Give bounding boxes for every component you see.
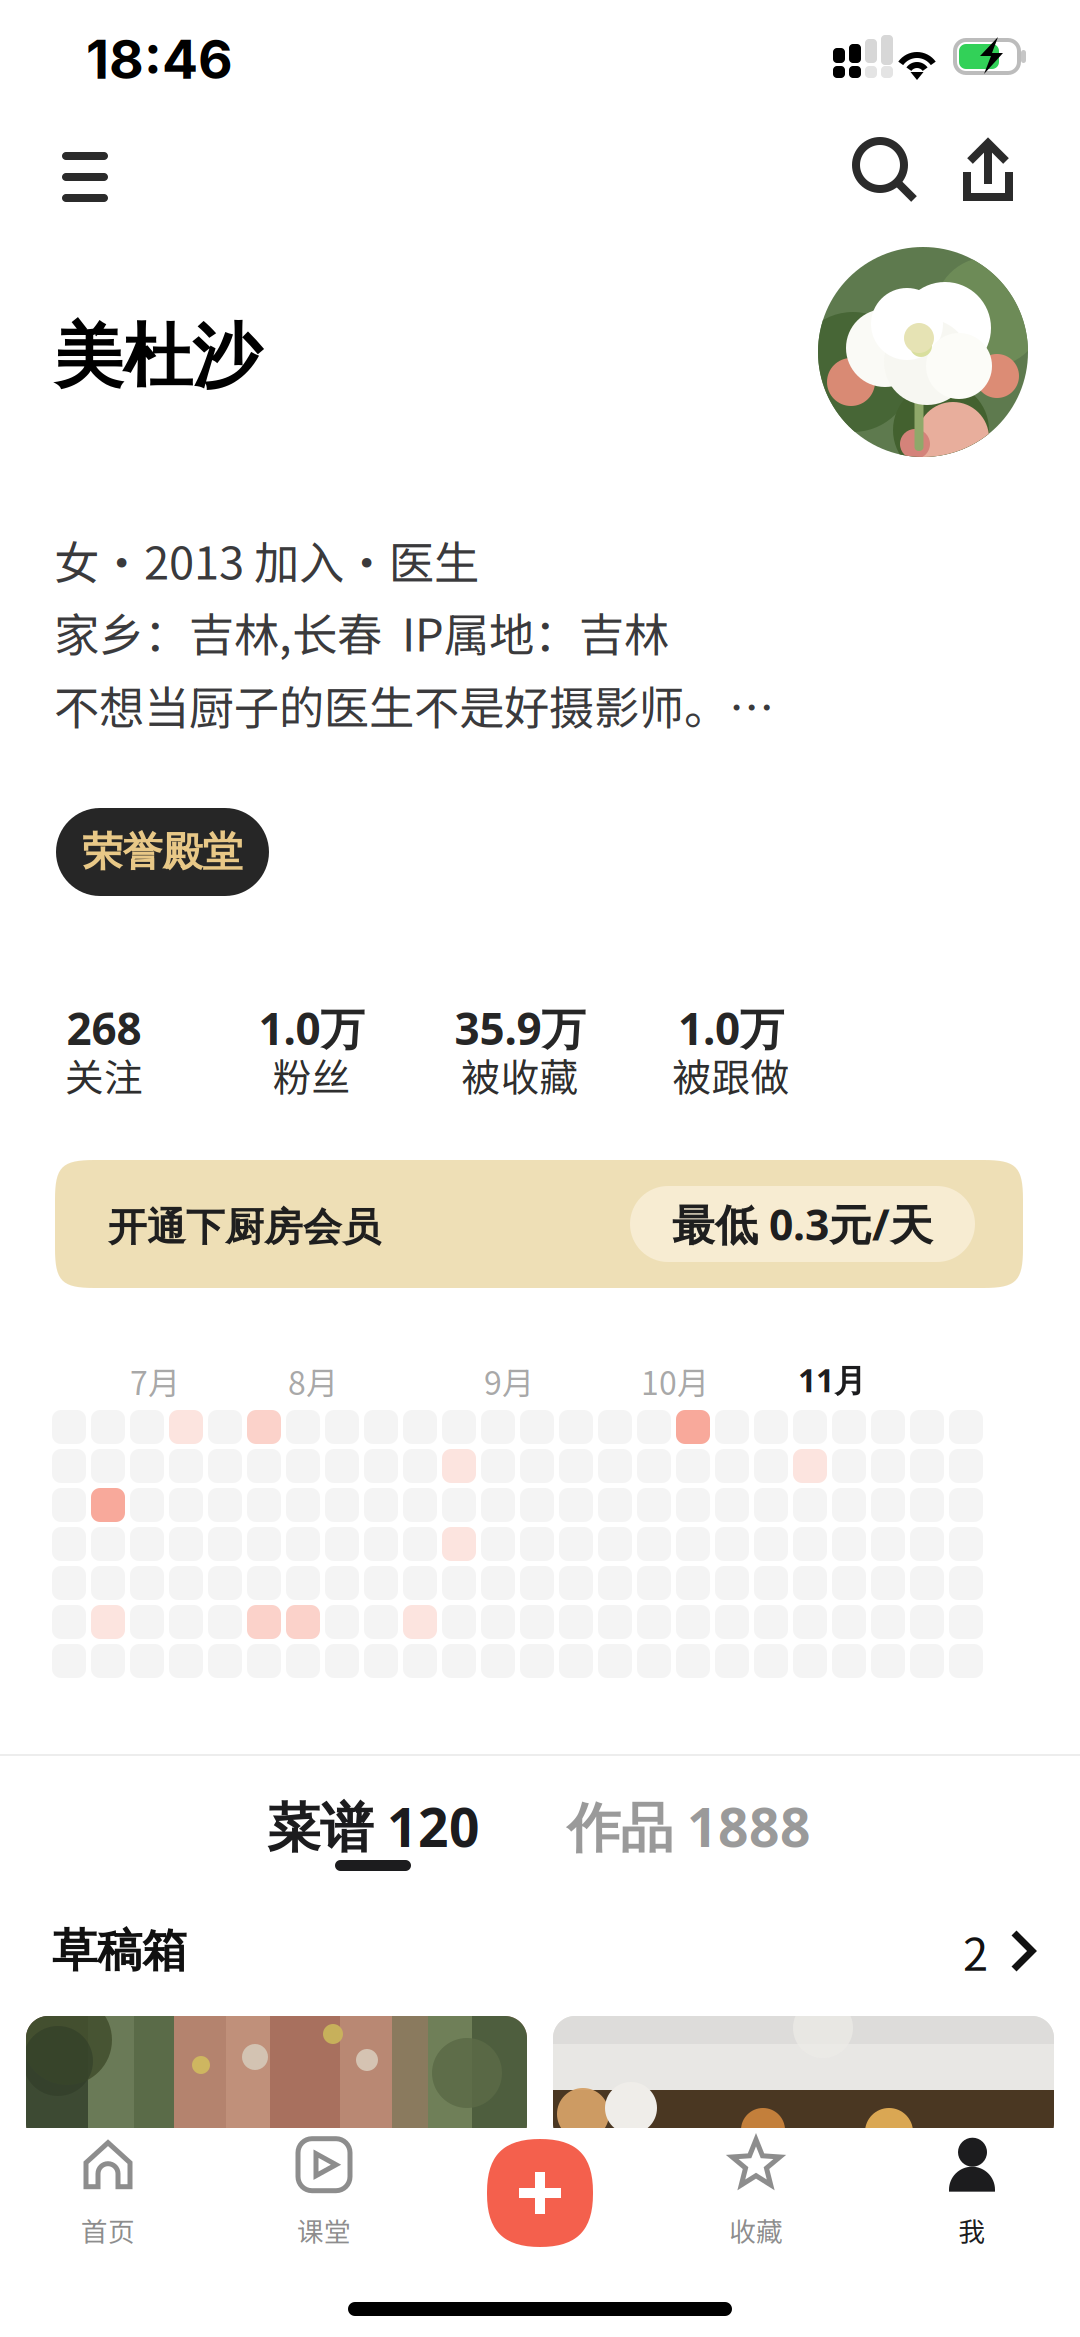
staticText: 10月: [641, 1358, 709, 1404]
staticText: 2: [963, 1918, 988, 1984]
button[interactable]: 荣誉殿堂: [56, 808, 269, 896]
button[interactable]: 开通下厨房会员: [55, 1160, 1023, 1288]
staticText: 开通下厨房会员: [108, 1203, 381, 1252]
staticText: 家乡：吉林,长春 IP属地：吉林: [54, 599, 669, 665]
staticText: 作品 1888: [567, 1790, 811, 1863]
staticText: 女・2013 加入・医生: [54, 527, 479, 593]
staticText: 首页: [81, 2211, 135, 2249]
button[interactable]: 课堂: [216, 2128, 432, 2258]
staticText: 美杜沙: [54, 313, 261, 400]
button[interactable]: 收藏: [648, 2128, 864, 2258]
staticText: 1.0万: [678, 998, 784, 1058]
staticText: 18:46: [86, 27, 233, 91]
staticText: 1.0万: [258, 998, 364, 1058]
staticText: 粉丝: [272, 1047, 350, 1103]
button[interactable]: 作品 1888: [567, 1790, 811, 1863]
button[interactable]: 首页: [0, 2128, 216, 2258]
staticText: 35.9万: [454, 998, 585, 1058]
staticText: 268: [66, 998, 141, 1058]
button[interactable]: 菜谱 120: [267, 1790, 527, 1884]
button[interactable]: Create: [432, 2128, 648, 2258]
staticText: 我: [958, 2211, 985, 2249]
button[interactable]: 35.9万: [415, 1005, 625, 1099]
staticText: 荣誉殿堂: [82, 827, 242, 877]
button[interactable]: Draft recipe 2: [553, 2016, 1054, 2146]
staticText: 11月: [798, 1358, 866, 1402]
button[interactable]: 1.0万: [625, 1005, 837, 1099]
staticText: 被跟做: [672, 1047, 789, 1103]
button[interactable]: 1.0万: [208, 1005, 415, 1099]
button[interactable]: Menu: [40, 132, 130, 222]
button[interactable]: Draft recipe 1: [26, 2016, 527, 2146]
button[interactable]: 草稿箱: [0, 1918, 1080, 1984]
button[interactable]: Profile photo: [818, 247, 1028, 457]
button[interactable]: Share: [938, 121, 1038, 221]
staticText: 被收藏: [461, 1047, 578, 1103]
button[interactable]: 我: [864, 2128, 1080, 2258]
button[interactable]: Search: [835, 121, 935, 221]
staticText: 收藏: [729, 2211, 783, 2249]
staticText: 关注: [65, 1047, 143, 1103]
staticText: 菜谱 120: [267, 1790, 480, 1863]
staticText: 8月: [288, 1358, 338, 1404]
button[interactable]: 268: [0, 1005, 208, 1099]
staticText: 最低 0.3元/天: [672, 1195, 933, 1253]
staticText: 9月: [484, 1358, 534, 1404]
staticText: 课堂: [297, 2211, 351, 2249]
staticText: 草稿箱: [52, 1922, 187, 1979]
staticText: 7月: [130, 1358, 180, 1404]
staticText: 不想当厨子的医生不是好摄影师。…: [54, 672, 774, 738]
